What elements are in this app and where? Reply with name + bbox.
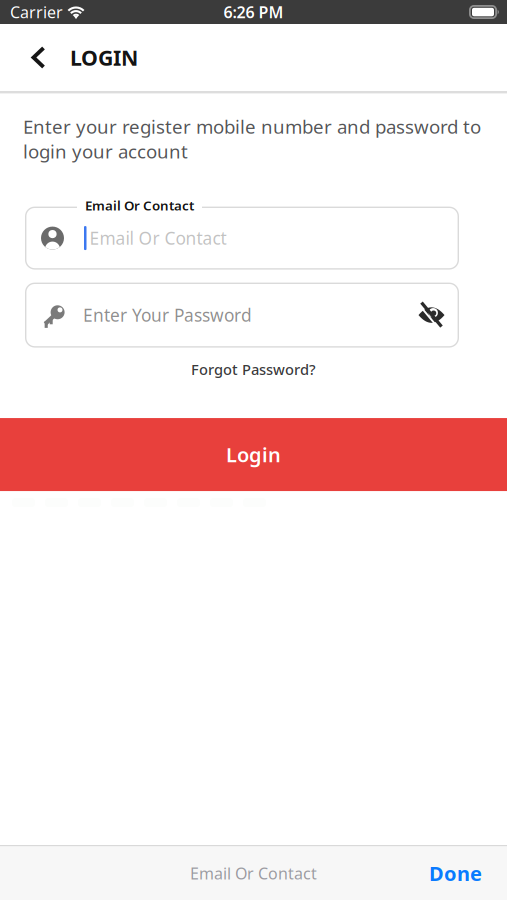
staticText: Login — [226, 441, 281, 468]
button[interactable]: Show password — [418, 302, 459, 329]
staticText: LOGIN — [70, 43, 138, 72]
staticText: Enter Your Password — [83, 304, 252, 327]
button[interactable]: Email Or Contact — [25, 207, 459, 270]
staticText: Carrier — [10, 1, 63, 23]
button[interactable]: Forgot Password? — [0, 348, 507, 379]
staticText: Email Or Contact — [89, 227, 226, 250]
button[interactable]: Login — [0, 418, 507, 491]
staticText: 6:26 PM — [223, 1, 283, 23]
staticText: Email Or Contact — [190, 863, 317, 884]
button[interactable]: Back — [0, 45, 55, 69]
staticText: Email Or Contact — [85, 197, 194, 214]
staticText: Done — [429, 860, 482, 887]
staticText: Forgot Password? — [191, 360, 316, 379]
button[interactable]: Done — [429, 860, 507, 887]
staticText: Enter your register mobile number and pa… — [23, 114, 481, 164]
button[interactable]: Enter Your Password — [25, 283, 459, 348]
